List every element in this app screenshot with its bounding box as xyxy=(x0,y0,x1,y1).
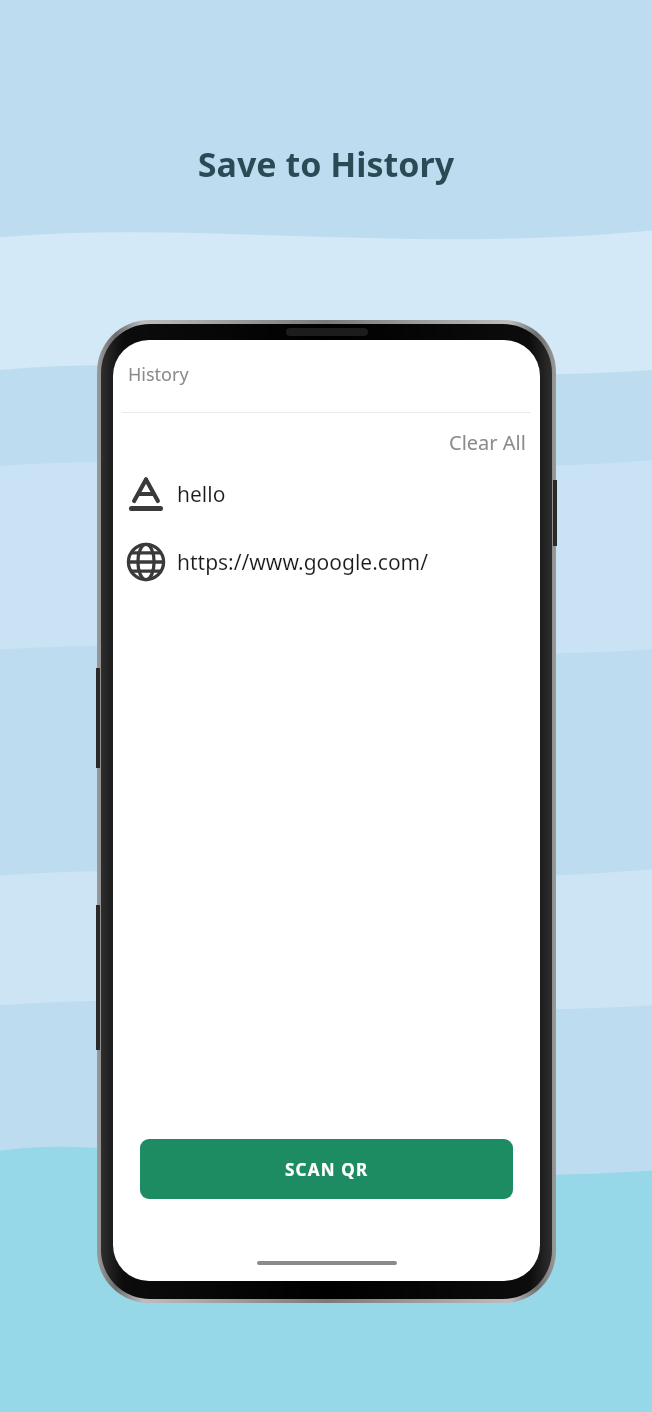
staticText: hello xyxy=(177,480,226,509)
button[interactable]: SCAN QR xyxy=(140,1139,513,1199)
other: Link history entry xyxy=(124,540,168,584)
other: Text history entry xyxy=(124,472,168,516)
staticText: https://www.google.com/ xyxy=(177,548,429,577)
staticText: SCAN QR xyxy=(285,1158,369,1181)
button[interactable]: Text history entry xyxy=(113,472,540,516)
staticText: Save to History xyxy=(0,141,652,187)
button[interactable]: Link history entry xyxy=(113,540,540,584)
button[interactable]: Clear All xyxy=(435,425,540,460)
staticText: History xyxy=(128,362,189,387)
